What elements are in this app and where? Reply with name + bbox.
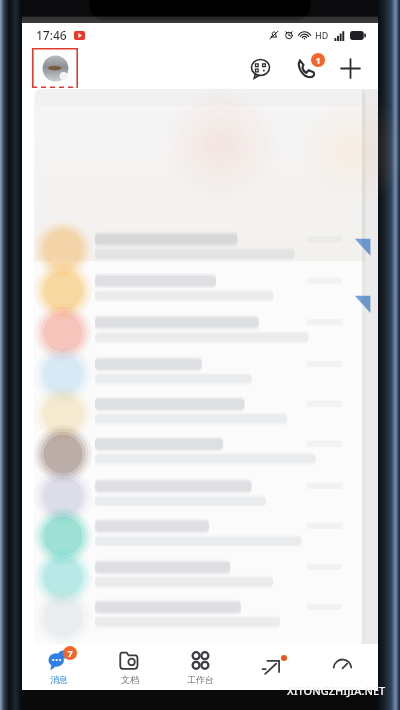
button[interactable]: 工作台: [165, 644, 236, 690]
button[interactable]: Conversation: [22, 347, 378, 393]
staticText: HD: [315, 29, 329, 41]
staticText: XITONGZHIJIA.NET: [287, 683, 386, 698]
staticText: 消息: [50, 674, 68, 685]
button[interactable]: Conversation: [22, 393, 378, 439]
button[interactable]: Tab: [307, 644, 378, 690]
button[interactable]: 7: [22, 644, 94, 690]
staticText: 7: [67, 647, 73, 659]
button[interactable]: [32, 48, 78, 88]
staticText: 1: [315, 54, 321, 66]
staticText: 工作台: [187, 674, 214, 685]
button[interactable]: Tab: [236, 644, 307, 690]
button[interactable]: Conversation: [22, 531, 378, 577]
button[interactable]: Conversation: [22, 209, 378, 255]
button[interactable]: Conversation: [22, 301, 378, 347]
staticText: 文档: [121, 674, 139, 685]
button[interactable]: Scan: [242, 50, 278, 86]
button[interactable]: 文档: [94, 644, 165, 690]
button[interactable]: Conversation: [22, 255, 378, 301]
staticText: 17:46: [36, 27, 67, 43]
button[interactable]: Calls: [288, 49, 326, 87]
button[interactable]: Conversation: [22, 485, 378, 531]
button[interactable]: Add: [332, 50, 368, 86]
button[interactable]: Conversation: [22, 439, 378, 485]
